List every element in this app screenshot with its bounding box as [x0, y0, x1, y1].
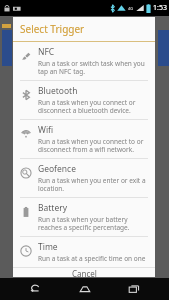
staticText: Run a task when you enter or exit a loca… — [38, 176, 146, 193]
other: Bluetooth — [20, 89, 32, 101]
button[interactable]: Recents — [119, 278, 149, 300]
other: Geofence — [20, 167, 32, 179]
staticText: Run a task when you connect to or discon… — [38, 137, 144, 154]
other: Battery — [20, 206, 32, 218]
staticText: Run a task at a specific time on one — [38, 254, 146, 263]
staticText: Select Trigger — [20, 22, 85, 36]
staticText: Run a task or switch task when you tap a… — [38, 59, 145, 76]
button[interactable]: Back — [20, 278, 50, 300]
button[interactable]: Home — [70, 278, 100, 300]
button[interactable]: Battery — [13, 198, 155, 236]
other: Wifi — [20, 128, 32, 140]
staticText: Cancel — [72, 268, 97, 277]
staticText: 1:53 — [153, 3, 167, 13]
button[interactable]: Cancel — [13, 268, 155, 277]
button[interactable]: Wifi — [13, 120, 155, 158]
staticText: Geofence — [38, 163, 76, 175]
staticText: Run a task when you connect or disconnec… — [38, 98, 136, 115]
staticText: 4G — [128, 6, 134, 11]
button[interactable]: Bluetooth — [13, 81, 155, 119]
staticText: Battery — [38, 202, 68, 214]
staticText: NFC — [38, 46, 55, 58]
other: Time — [20, 245, 32, 257]
staticText: Time — [38, 241, 58, 253]
staticText: Bluetooth — [38, 85, 78, 97]
other: NFC — [20, 50, 32, 62]
button[interactable]: NFC — [13, 42, 155, 80]
button[interactable]: Time — [13, 237, 155, 267]
staticText: Run a task when your battery reaches a s… — [38, 215, 130, 232]
button[interactable]: Geofence — [13, 159, 155, 197]
staticText: Wifi — [38, 124, 54, 136]
